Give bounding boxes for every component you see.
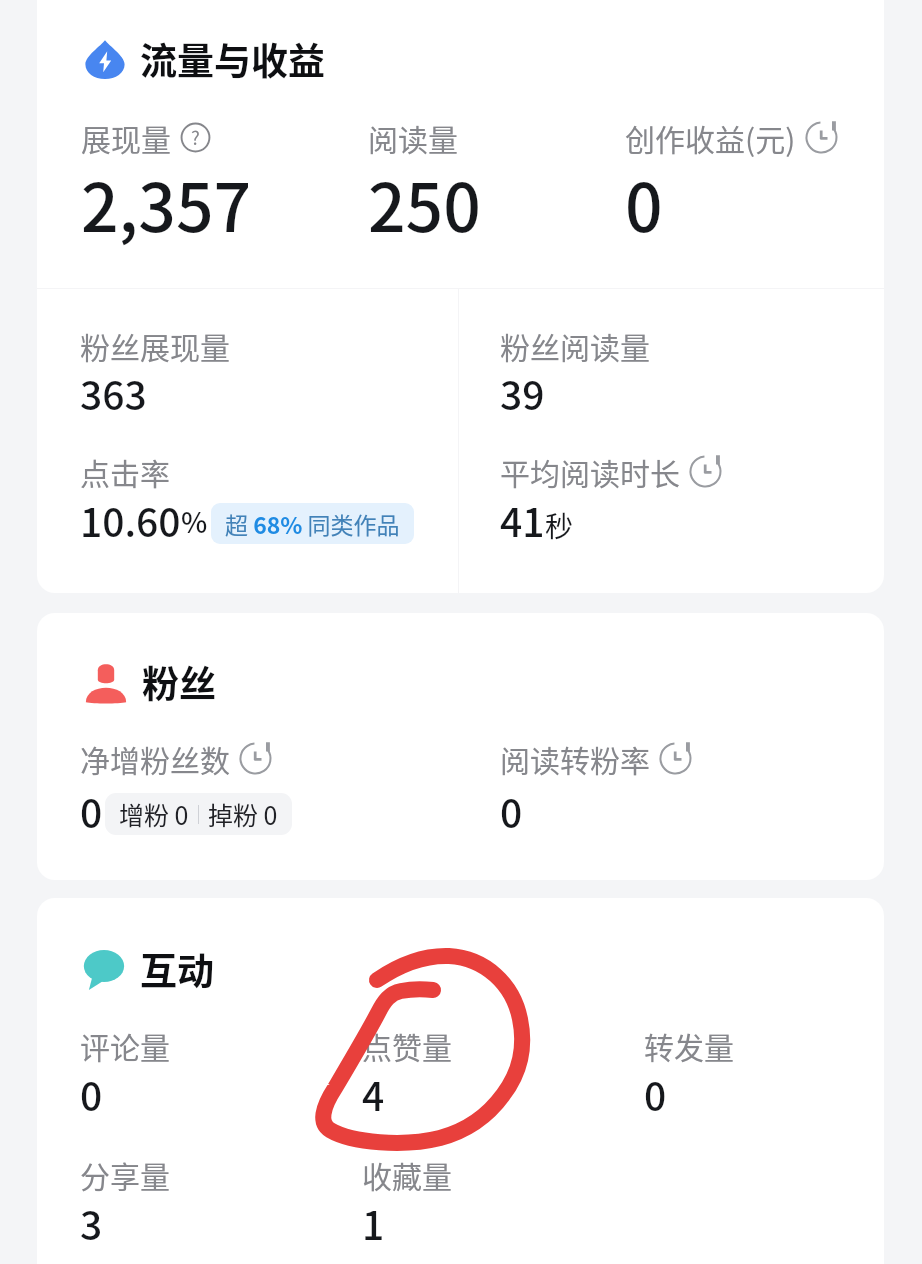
button[interactable]: 0 — [80, 783, 292, 839]
other: 数据说明 — [659, 742, 692, 775]
staticText: 增粉 0 — [119, 796, 189, 832]
button[interactable]: 10.60 — [80, 492, 414, 548]
staticText: 2,357 — [81, 155, 252, 251]
staticText: 净增粉丝数 — [80, 737, 230, 780]
button[interactable]: 2,357 — [81, 155, 252, 251]
button[interactable]: 点赞量 — [362, 1024, 452, 1067]
button[interactable]: 3 — [80, 1195, 103, 1251]
staticText: 点击率 — [80, 450, 170, 493]
button[interactable]: 粉丝阅读量 — [500, 324, 650, 367]
staticText: 0 — [625, 155, 663, 251]
staticText: 1 — [362, 1195, 385, 1251]
staticText: 41 — [500, 492, 545, 548]
staticText: 超 68% 同类作品 — [225, 507, 400, 540]
button[interactable]: 收藏量 — [362, 1153, 452, 1196]
staticText: 展现量 — [81, 116, 171, 159]
button[interactable]: 粉丝展现量 — [80, 324, 230, 367]
button[interactable]: 流量与收益 — [85, 32, 325, 86]
staticText: % — [181, 501, 208, 542]
other: 说明 — [180, 122, 211, 153]
staticText: 39 — [500, 365, 545, 421]
staticText: 转发量 — [644, 1024, 734, 1067]
staticText: 流量与收益 — [140, 32, 325, 86]
staticText: 粉丝阅读量 — [500, 324, 650, 367]
staticText: 评论量 — [80, 1024, 170, 1067]
staticText: 创作收益(元) — [625, 116, 796, 159]
staticText: 阅读转粉率 — [500, 737, 650, 780]
button[interactable]: 超 68% 同类作品 — [225, 507, 400, 540]
staticText: 互动 — [140, 942, 214, 996]
button[interactable]: 创作收益(元) — [625, 116, 838, 159]
staticText: 3 — [80, 1195, 103, 1251]
button[interactable]: 分享量 — [80, 1153, 170, 1196]
button[interactable]: 平均阅读时长 — [500, 450, 722, 493]
staticText: 250 — [368, 155, 481, 251]
staticText: ? — [191, 123, 200, 150]
other: 数据说明 — [805, 121, 838, 154]
staticText: 阅读量 — [368, 116, 458, 159]
button[interactable]: 粉丝 — [85, 655, 216, 709]
staticText: 秒 — [545, 505, 574, 546]
button[interactable]: 0 — [80, 1066, 103, 1122]
staticText: 4 — [362, 1066, 385, 1122]
button[interactable]: 展现量 — [81, 116, 211, 159]
other: 数据说明 — [689, 455, 722, 488]
staticText: 0 — [500, 783, 523, 839]
button[interactable]: 互动 — [83, 942, 214, 996]
staticText: 10.60 — [80, 492, 181, 548]
button[interactable]: 250 — [368, 155, 481, 251]
staticText: 0 — [80, 783, 103, 839]
staticText: 粉丝展现量 — [80, 324, 230, 367]
button[interactable]: 净增粉丝数 — [80, 737, 272, 780]
staticText: 分享量 — [80, 1153, 170, 1196]
button[interactable]: 转发量 — [644, 1024, 734, 1067]
staticText: 平均阅读时长 — [500, 450, 680, 493]
staticText: 0 — [80, 1066, 103, 1122]
staticText: 粉丝 — [142, 655, 216, 709]
button[interactable]: 阅读量 — [368, 116, 458, 159]
staticText: 0 — [644, 1066, 667, 1122]
button[interactable]: 41 — [500, 492, 574, 548]
staticText: 点赞量 — [362, 1024, 452, 1067]
button[interactable]: 0 — [500, 783, 523, 839]
other: 标注 — [0, 0, 922, 1264]
button[interactable]: 0 — [625, 155, 663, 251]
button[interactable]: 1 — [362, 1195, 385, 1251]
button[interactable]: 363 — [80, 365, 147, 421]
button[interactable]: 点击率 — [80, 450, 170, 493]
button[interactable]: 评论量 — [80, 1024, 170, 1067]
staticText: 收藏量 — [362, 1153, 452, 1196]
button[interactable]: 0 — [644, 1066, 667, 1122]
other: 数据说明 — [239, 742, 272, 775]
button[interactable]: 39 — [500, 365, 545, 421]
button[interactable]: 4 — [362, 1066, 385, 1122]
button[interactable]: 阅读转粉率 — [500, 737, 692, 780]
staticText: 掉粉 0 — [208, 796, 278, 832]
button[interactable]: 增粉 0 — [119, 796, 278, 832]
staticText: 363 — [80, 365, 147, 421]
